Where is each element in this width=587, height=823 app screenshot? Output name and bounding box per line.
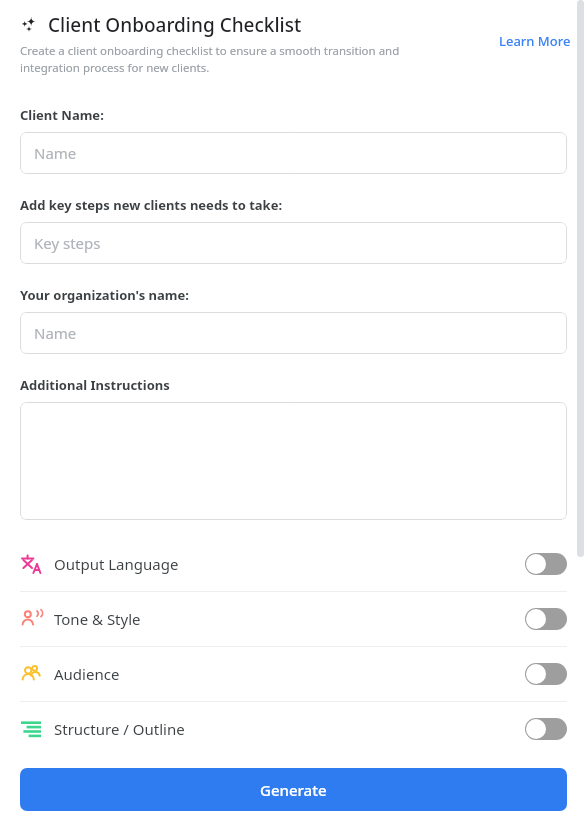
staticText: Audience <box>54 664 525 684</box>
staticText: Your organization's name: <box>20 286 189 304</box>
staticText: Name <box>34 323 77 343</box>
button[interactable]: Output Language <box>0 537 587 591</box>
button[interactable]: Audience toggle <box>525 663 567 685</box>
button[interactable]: Structure / Outline toggle <box>525 718 567 740</box>
button[interactable]: Tone & Style <box>0 592 587 646</box>
staticText: Name <box>34 143 77 163</box>
button[interactable] <box>20 402 567 520</box>
staticText: Learn More <box>499 32 571 50</box>
button[interactable]: Name <box>20 312 567 354</box>
button[interactable]: Learn More <box>497 30 573 52</box>
button[interactable]: Tone & Style toggle <box>525 608 567 630</box>
staticText: Create a client onboarding checklist to … <box>20 43 450 76</box>
staticText: Generate <box>260 780 327 800</box>
staticText: Add key steps new clients needs to take: <box>20 196 283 214</box>
staticText: Client Name: <box>20 106 104 124</box>
staticText: Output Language <box>54 554 525 574</box>
button[interactable]: Audience <box>0 647 587 701</box>
button[interactable]: Output Language toggle <box>525 553 567 575</box>
staticText: Additional Instructions <box>20 376 170 394</box>
staticText: Structure / Outline <box>54 719 525 739</box>
staticText: Client Onboarding Checklist <box>48 12 302 38</box>
staticText: Key steps <box>34 233 101 253</box>
staticText: Tone & Style <box>54 609 525 629</box>
button[interactable]: Name <box>20 132 567 174</box>
button[interactable]: Structure / Outline <box>0 702 587 756</box>
button[interactable]: Generate <box>20 768 567 811</box>
button[interactable]: Key steps <box>20 222 567 264</box>
